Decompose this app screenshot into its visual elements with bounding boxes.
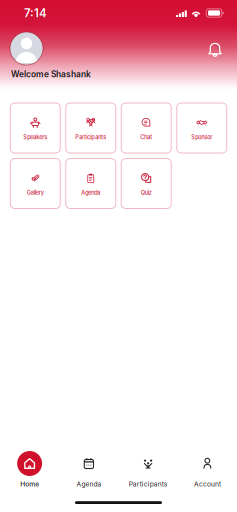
staticText: Participants (129, 480, 168, 488)
staticText: Agenda (76, 480, 101, 488)
button[interactable]: Participants (66, 103, 116, 153)
button[interactable]: Account (178, 451, 237, 488)
button[interactable]: Home (0, 451, 59, 488)
button[interactable]: Gallery (10, 158, 60, 208)
button[interactable]: Agenda (66, 158, 116, 208)
button[interactable]: Agenda (59, 451, 118, 488)
button[interactable]: Notifications (202, 35, 228, 61)
button[interactable]: Chat (121, 103, 171, 153)
button[interactable]: Sponsor (177, 103, 227, 153)
staticText: Sponsor (191, 134, 212, 140)
staticText: Speakers (23, 134, 47, 140)
staticText: Participants (75, 134, 106, 140)
staticText: Chat (140, 134, 152, 140)
staticText: Agenda (81, 189, 100, 196)
staticText: 7:14 (24, 6, 47, 20)
staticText: Gallery (27, 189, 44, 196)
staticText: Account (194, 480, 221, 488)
staticText: Welcome Shashank (11, 69, 91, 79)
button[interactable]: Speakers (10, 103, 60, 153)
staticText: Home (20, 480, 39, 488)
button[interactable]: Quiz (121, 158, 171, 208)
button[interactable]: Participants (118, 451, 178, 488)
staticText: Quiz (141, 189, 152, 196)
